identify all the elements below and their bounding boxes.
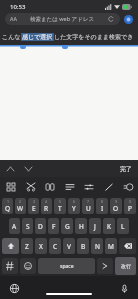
staticText: W — [17, 204, 24, 213]
button[interactable]: K — [103, 218, 115, 234]
staticText: 1 — [7, 199, 10, 204]
staticText: L — [121, 222, 125, 231]
staticText: 6 — [73, 199, 76, 204]
staticText: 9 — [115, 199, 118, 204]
button[interactable]: Selection end handle — [62, 45, 68, 49]
button[interactable]: space — [38, 258, 95, 274]
button[interactable]: Voice input — [118, 282, 130, 294]
button[interactable]: Clipboard — [23, 179, 38, 194]
staticText: A — [12, 222, 17, 231]
staticText: X — [39, 242, 43, 251]
button[interactable]: Shift — [2, 238, 19, 254]
button[interactable]: 改行 — [115, 257, 136, 275]
button[interactable]: L — [117, 218, 129, 234]
button[interactable]: Next — [97, 258, 113, 274]
button[interactable]: AA — [5, 13, 120, 25]
button[interactable]: Stickers — [42, 179, 57, 194]
staticText: Q — [5, 204, 11, 213]
button[interactable]: Emoji — [20, 258, 36, 274]
staticText: P — [128, 204, 132, 213]
staticText: C — [53, 242, 58, 251]
button[interactable]: 9 — [110, 198, 122, 214]
staticText: I — [101, 204, 104, 213]
button[interactable]: 2 — [15, 198, 26, 214]
staticText: 0 — [129, 199, 132, 204]
staticText: 感じで選択 — [22, 33, 53, 41]
staticText: 改行 — [121, 263, 131, 269]
staticText: M — [108, 242, 114, 251]
button[interactable]: B — [77, 238, 89, 254]
button[interactable]: J — [89, 218, 101, 234]
button[interactable]: Change language — [8, 282, 20, 294]
button[interactable]: V — [63, 238, 75, 254]
staticText: F — [52, 222, 56, 231]
staticText: D — [38, 222, 43, 231]
button[interactable]: C — [49, 238, 61, 254]
button[interactable]: Selection start handle — [20, 45, 26, 49]
staticText: N — [95, 242, 100, 251]
button[interactable]: H — [75, 218, 87, 234]
staticText: Y — [72, 204, 76, 213]
button[interactable]: Z — [21, 238, 33, 254]
staticText: space — [60, 263, 74, 270]
staticText: Z — [25, 242, 29, 251]
button[interactable]: 5 — [54, 198, 66, 214]
button[interactable]: A — [9, 218, 20, 234]
staticText: 10:53 — [10, 3, 26, 11]
staticText: B — [81, 242, 86, 251]
button[interactable]: Previous field — [5, 164, 15, 174]
staticText: 3 — [33, 199, 36, 204]
button[interactable]: Draw — [101, 179, 116, 194]
button[interactable]: Keyboard layout — [3, 179, 18, 194]
staticText: 4 — [45, 199, 48, 204]
staticText: O — [113, 204, 119, 213]
button[interactable]: Account — [124, 15, 133, 24]
button[interactable]: N — [91, 238, 103, 254]
button[interactable]: M — [105, 238, 117, 254]
staticText: した文字をそのまま検索できます — [54, 33, 138, 41]
staticText: J — [94, 222, 96, 231]
staticText: 2 — [19, 199, 22, 204]
staticText: こんな — [2, 33, 21, 41]
button[interactable]: 完了 — [120, 165, 138, 173]
staticText: 検索または web アドレス — [17, 15, 107, 23]
staticText: 8 — [101, 199, 104, 204]
button[interactable]: 3 — [28, 198, 39, 214]
button[interactable]: S — [22, 218, 33, 234]
button[interactable]: Reload — [107, 15, 115, 23]
button[interactable]: 0 — [124, 198, 136, 214]
button[interactable]: Numbers — [2, 258, 18, 274]
button[interactable]: X — [35, 238, 47, 254]
button[interactable]: D — [35, 218, 46, 234]
staticText: U — [86, 204, 91, 213]
button[interactable]: Settings — [81, 179, 96, 194]
staticText: S — [26, 222, 30, 231]
button[interactable]: Next field — [23, 164, 33, 174]
staticText: AA — [10, 16, 17, 23]
button[interactable]: Translate — [62, 179, 77, 194]
staticText: K — [107, 222, 112, 231]
button[interactable]: More — [120, 179, 135, 194]
button[interactable]: 6 — [68, 198, 80, 214]
staticText: E — [32, 204, 36, 213]
staticText: H — [79, 222, 84, 231]
button[interactable]: F — [48, 218, 59, 234]
button[interactable]: 1 — [2, 198, 13, 214]
button[interactable]: G — [61, 218, 73, 234]
staticText: G — [65, 222, 70, 231]
button[interactable]: Backspace — [119, 238, 136, 254]
staticText: R — [44, 204, 49, 213]
staticText: V — [67, 242, 71, 251]
button[interactable]: 4 — [41, 198, 52, 214]
button[interactable]: 8 — [96, 198, 108, 214]
button[interactable]: 7 — [82, 198, 94, 214]
staticText: 5 — [59, 199, 62, 204]
staticText: 7 — [87, 199, 90, 204]
staticText: T — [58, 204, 62, 213]
